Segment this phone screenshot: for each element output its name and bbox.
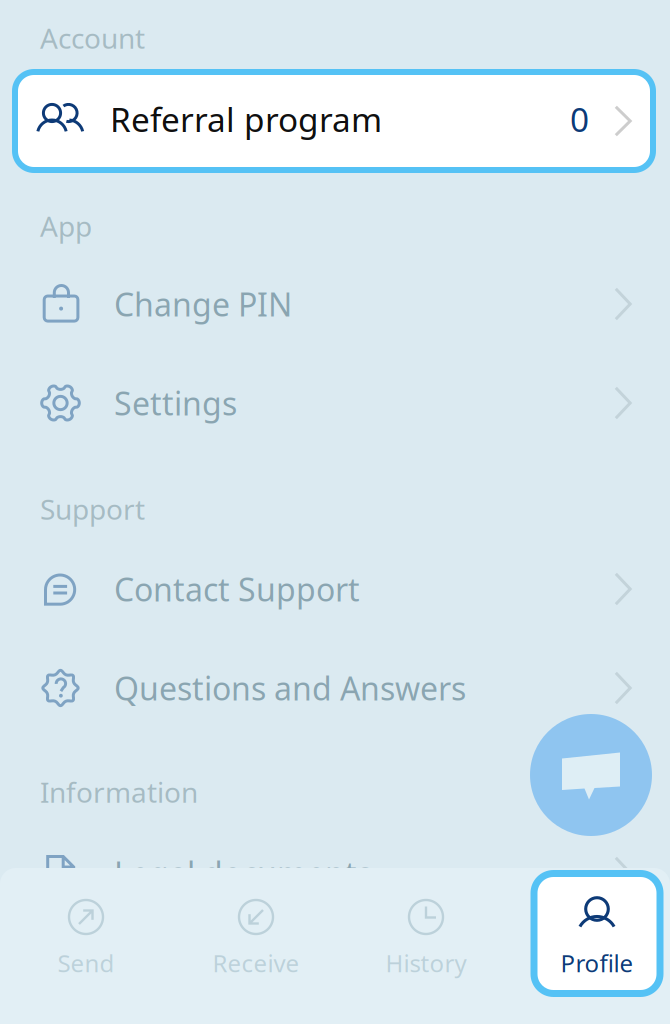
- staticText: Receive: [212, 947, 299, 979]
- staticText: Information: [40, 773, 198, 811]
- staticText: Change PIN: [114, 283, 292, 325]
- button[interactable]: Questions and Answers: [0, 656, 670, 720]
- staticText: Settings: [114, 382, 237, 424]
- staticText: Legal documents: [114, 852, 372, 894]
- button[interactable]: Change PIN: [0, 272, 670, 336]
- staticText: 0: [570, 97, 589, 141]
- button[interactable]: History: [359, 870, 492, 997]
- staticText: Questions and Answers: [114, 667, 466, 709]
- button[interactable]: Contact Support: [0, 557, 670, 621]
- button[interactable]: Profile: [530, 870, 663, 997]
- staticText: Send: [57, 947, 114, 979]
- staticText: App: [40, 207, 92, 245]
- button[interactable]: Receive: [189, 870, 322, 997]
- button[interactable]: Legal documents: [0, 841, 670, 905]
- button[interactable]: Chat with support: [530, 714, 652, 836]
- staticText: Referral program: [110, 97, 382, 141]
- button[interactable]: Referral program: [12, 69, 656, 173]
- staticText: Contact Support: [114, 568, 360, 610]
- button[interactable]: Settings: [0, 371, 670, 435]
- staticText: Account: [40, 19, 145, 57]
- button[interactable]: Send: [19, 870, 152, 997]
- staticText: History: [385, 947, 466, 979]
- staticText: Profile: [560, 947, 633, 979]
- staticText: Support: [40, 490, 145, 528]
